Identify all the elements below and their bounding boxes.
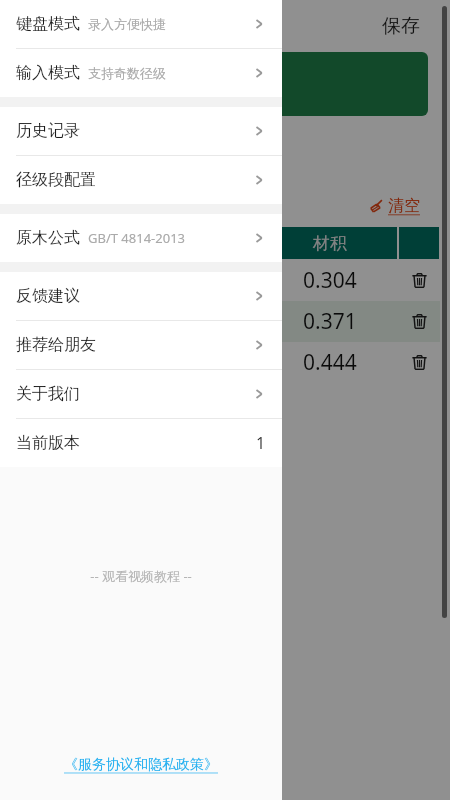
staticText: 新 增 (197, 69, 249, 100)
button[interactable]: 反馈建议 (0, 272, 282, 320)
staticText: 1 (256, 432, 266, 454)
button[interactable]: 径级段配置 (0, 156, 282, 204)
button[interactable]: 清空 (365, 194, 424, 218)
button[interactable]: 新 增 (18, 52, 428, 116)
staticText: 16.00 (216, 157, 270, 186)
button[interactable]: 删除 (398, 260, 440, 301)
staticText: 反馈建议 (16, 286, 80, 306)
staticText: 录入方便快捷 (88, 16, 166, 32)
button[interactable]: 当前版本 (0, 419, 282, 467)
staticText: GB/T 4814-2013 (88, 229, 186, 247)
staticText: 输入模式 (16, 63, 80, 83)
button[interactable]: 删除 (398, 342, 440, 383)
staticText: 键盘模式 (16, 14, 80, 34)
staticText: 径级段配置 (16, 170, 96, 190)
button[interactable]: 《服务协议和隐私政策》 (60, 752, 222, 778)
staticText: 推荐给朋友 (16, 335, 96, 355)
staticText: 0.304 (303, 266, 357, 295)
staticText: 0.371 (303, 307, 357, 336)
staticText: 材积 (313, 233, 347, 254)
staticText: 清空 (388, 196, 420, 216)
staticText: 关于我们 (16, 384, 80, 404)
button[interactable]: 键盘模式 (0, 0, 282, 48)
staticText: 保存 (382, 14, 420, 38)
button[interactable]: 推荐给朋友 (0, 321, 282, 369)
staticText: 《服务协议和隐私政策》 (64, 756, 218, 774)
staticText: 历史记录 (16, 121, 80, 141)
staticText: 0.444 (303, 348, 357, 377)
staticText: -- 观看视频教程 -- (90, 567, 192, 585)
button[interactable]: -- 观看视频教程 -- (0, 567, 282, 585)
button[interactable]: 历史记录 (0, 107, 282, 155)
staticText: 支持奇数径级 (88, 65, 166, 81)
button[interactable]: 关于我们 (0, 370, 282, 418)
button[interactable]: 删除 (398, 301, 440, 342)
staticText: 原木公式 (16, 228, 80, 248)
button[interactable]: 输入模式 (0, 49, 282, 97)
button[interactable]: 保存 (374, 8, 428, 44)
staticText: 当前版本 (16, 433, 80, 453)
button[interactable]: 原木公式 (0, 214, 282, 262)
